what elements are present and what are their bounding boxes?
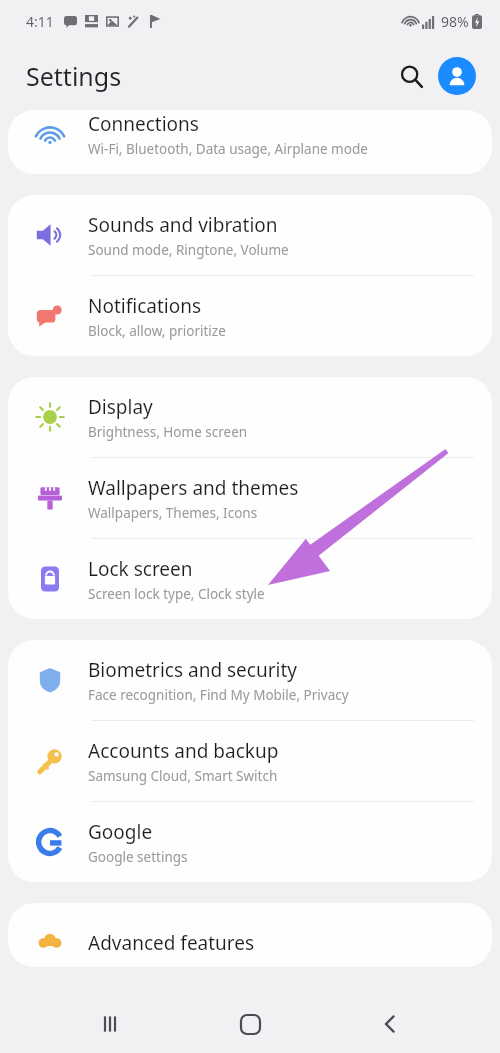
- button[interactable]: Lock screen: [8, 539, 492, 619]
- button[interactable]: Back: [360, 995, 420, 1053]
- staticText: Block, allow, prioritize: [88, 322, 226, 340]
- staticText: Wi-Fi, Bluetooth, Data usage, Airplane m…: [88, 140, 368, 158]
- staticText: Biometrics and security: [88, 657, 298, 683]
- staticText: Wallpapers, Themes, Icons: [88, 504, 258, 522]
- staticText: Screen lock type, Clock style: [88, 585, 265, 603]
- button[interactable]: Advanced features: [8, 903, 492, 967]
- button[interactable]: Biometrics and security: [8, 640, 492, 720]
- button[interactable]: Google: [8, 802, 492, 882]
- staticText: Accounts and backup: [88, 738, 279, 764]
- staticText: Lock screen: [88, 556, 193, 582]
- button[interactable]: Display: [8, 377, 492, 457]
- staticText: Notifications: [88, 293, 202, 319]
- staticText: Face recognition, Find My Mobile, Privac…: [88, 686, 349, 704]
- button[interactable]: Account: [438, 57, 476, 95]
- staticText: Sounds and vibration: [88, 212, 278, 238]
- button[interactable]: Accounts and backup: [8, 721, 492, 801]
- staticText: Google: [88, 819, 153, 845]
- staticText: Settings: [26, 59, 122, 93]
- staticText: 98%: [441, 12, 469, 31]
- staticText: Advanced features: [88, 930, 255, 956]
- button[interactable]: Sounds and vibration: [8, 195, 492, 275]
- staticText: Samsung Cloud, Smart Switch: [88, 767, 278, 785]
- button[interactable]: Home: [220, 995, 280, 1053]
- staticText: Connections: [88, 111, 199, 137]
- staticText: Display: [88, 394, 153, 420]
- staticText: 4:11: [26, 12, 54, 31]
- staticText: Brightness, Home screen: [88, 423, 248, 441]
- button[interactable]: Search: [390, 55, 432, 97]
- button[interactable]: Notifications: [8, 276, 492, 356]
- button[interactable]: Recents: [80, 995, 140, 1053]
- staticText: Google settings: [88, 848, 188, 866]
- staticText: Sound mode, Ringtone, Volume: [88, 241, 289, 259]
- button[interactable]: Wallpapers and themes: [8, 458, 492, 538]
- staticText: Wallpapers and themes: [88, 475, 299, 501]
- button[interactable]: Connections: [8, 110, 492, 174]
